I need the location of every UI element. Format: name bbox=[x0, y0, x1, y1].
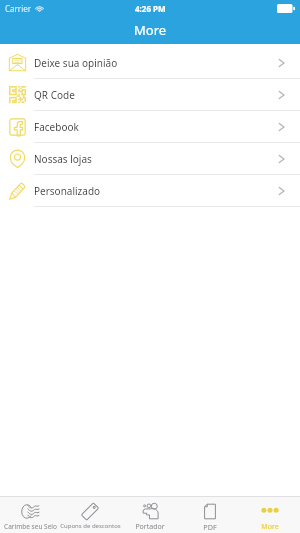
staticText: Facebook bbox=[34, 120, 79, 134]
staticText: Cupons de descontos bbox=[60, 522, 121, 530]
button[interactable]: Portador bbox=[120, 497, 180, 533]
staticText: More bbox=[261, 522, 279, 532]
button[interactable]: Personalizado bbox=[0, 175, 300, 207]
button[interactable]: Nossas lojas bbox=[0, 143, 300, 175]
staticText: Deixe sua opinião bbox=[34, 56, 118, 70]
button[interactable]: QR Code bbox=[0, 79, 300, 111]
button[interactable]: Deixe sua opinião bbox=[0, 47, 300, 79]
staticText: PDF bbox=[203, 522, 217, 532]
staticText: Portador bbox=[135, 522, 165, 532]
staticText: 4:26 PM bbox=[135, 3, 166, 14]
staticText: Carimbe seu Selo bbox=[4, 522, 57, 531]
staticText: Personalizado bbox=[34, 184, 101, 198]
button[interactable]: More bbox=[240, 497, 300, 533]
staticText: QR Code bbox=[34, 88, 75, 102]
button[interactable]: PDF bbox=[180, 497, 240, 533]
staticText: Nossas lojas bbox=[34, 152, 92, 166]
button[interactable]: Cupons de descontos bbox=[60, 497, 120, 533]
button[interactable]: Facebook bbox=[0, 111, 300, 143]
button[interactable]: Carimbe seu Selo bbox=[0, 497, 60, 533]
staticText: Carrier bbox=[5, 3, 32, 14]
staticText: More bbox=[134, 21, 167, 39]
